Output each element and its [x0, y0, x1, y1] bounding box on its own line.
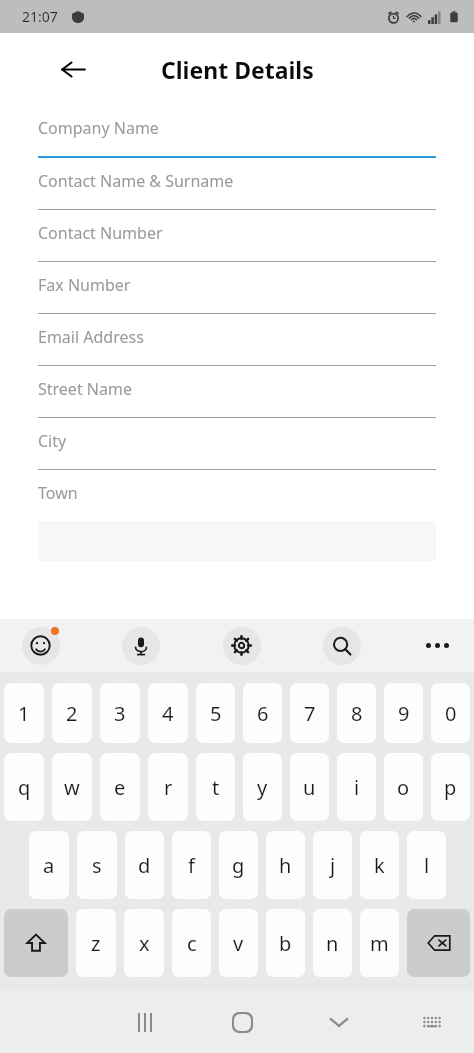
button[interactable]: 1 — [4, 683, 44, 743]
staticText: 21:07 — [22, 7, 58, 26]
button[interactable]: Back — [52, 48, 94, 90]
button[interactable]: g — [219, 831, 258, 899]
button[interactable]: Email Address — [38, 314, 436, 366]
button[interactable]: i — [337, 753, 376, 821]
staticText: l — [424, 852, 430, 879]
button[interactable]: v — [219, 909, 258, 977]
button[interactable]: 7 — [290, 683, 329, 743]
staticText: y — [257, 774, 268, 801]
staticText: c — [187, 930, 197, 957]
staticText: 5 — [210, 700, 222, 727]
button[interactable]: o — [384, 753, 423, 821]
button[interactable]: z — [76, 909, 116, 977]
staticText: Fax Number — [38, 274, 131, 296]
button[interactable]: Fax Number — [38, 262, 436, 314]
button[interactable]: Company Name — [38, 105, 436, 158]
button[interactable]: Backspace — [407, 909, 470, 977]
staticText: 2 — [66, 700, 78, 727]
staticText: x — [139, 930, 150, 957]
staticText: j — [330, 852, 336, 879]
staticText: Town — [38, 482, 78, 504]
staticText: p — [444, 774, 457, 801]
staticText: f — [188, 852, 195, 879]
staticText: t — [212, 774, 220, 801]
staticText: Client Details — [161, 54, 314, 85]
button[interactable]: Keyboard settings — [215, 619, 268, 672]
button[interactable]: m — [360, 909, 399, 977]
button[interactable]: Street Name — [38, 366, 436, 418]
button[interactable]: j — [313, 831, 352, 899]
button[interactable]: t — [196, 753, 235, 821]
staticText: w — [64, 774, 80, 801]
staticText: Email Address — [38, 326, 144, 348]
button[interactable]: 0 — [431, 683, 470, 743]
button[interactable]: y — [243, 753, 282, 821]
staticText: 4 — [162, 700, 174, 727]
button[interactable]: 6 — [243, 683, 282, 743]
button[interactable]: h — [266, 831, 305, 899]
button[interactable]: p — [431, 753, 470, 821]
staticText: k — [374, 852, 385, 879]
staticText: m — [370, 930, 389, 957]
staticText: Street Name — [38, 378, 132, 400]
button[interactable]: City — [38, 418, 436, 470]
button[interactable]: Shift — [4, 909, 68, 977]
button[interactable]: b — [266, 909, 305, 977]
staticText: 0 — [445, 700, 457, 727]
button[interactable]: 5 — [196, 683, 235, 743]
staticText: n — [326, 930, 339, 957]
staticText: r — [164, 774, 173, 801]
staticText: b — [279, 930, 292, 957]
staticText: Company Name — [38, 117, 159, 139]
staticText: 9 — [398, 700, 410, 727]
staticText: 8 — [351, 700, 363, 727]
staticText: h — [279, 852, 292, 879]
button[interactable]: Contact Name & Surname — [38, 158, 436, 210]
staticText: s — [92, 852, 102, 879]
staticText: a — [43, 852, 55, 879]
button[interactable]: c — [172, 909, 211, 977]
staticText: o — [397, 774, 410, 801]
button[interactable]: a — [29, 831, 69, 899]
button[interactable]: q — [4, 753, 44, 821]
staticText: 3 — [114, 700, 126, 727]
button[interactable]: Voice input — [114, 619, 167, 672]
button[interactable]: 8 — [337, 683, 376, 743]
button[interactable]: Recents — [121, 998, 169, 1046]
button[interactable]: 3 — [100, 683, 140, 743]
staticText: 7 — [304, 700, 316, 727]
button[interactable]: Hide keyboard — [315, 998, 363, 1046]
button[interactable]: n — [313, 909, 352, 977]
staticText: d — [138, 852, 151, 879]
button[interactable]: s — [77, 831, 117, 899]
button[interactable]: More options — [415, 623, 460, 668]
staticText: 1 — [18, 700, 30, 727]
button[interactable]: e — [100, 753, 140, 821]
button[interactable]: Switch keyboard — [412, 1002, 452, 1042]
button[interactable]: u — [290, 753, 329, 821]
button[interactable]: d — [125, 831, 164, 899]
staticText: City — [38, 430, 67, 452]
button[interactable]: w — [52, 753, 92, 821]
staticText: q — [18, 774, 31, 801]
staticText: e — [114, 774, 126, 801]
button[interactable]: 4 — [148, 683, 188, 743]
button[interactable]: Home — [218, 998, 266, 1046]
staticText: u — [303, 774, 316, 801]
button[interactable]: k — [360, 831, 399, 899]
button[interactable]: l — [407, 831, 446, 899]
button[interactable]: 9 — [384, 683, 423, 743]
button[interactable]: Contact Number — [38, 210, 436, 262]
staticText: Contact Name & Surname — [38, 170, 234, 192]
button[interactable]: r — [148, 753, 188, 821]
button[interactable]: Emoji — [14, 619, 67, 672]
staticText: z — [91, 930, 101, 957]
button[interactable]: 2 — [52, 683, 92, 743]
staticText: v — [233, 930, 244, 957]
button[interactable]: f — [172, 831, 211, 899]
button[interactable]: Search — [315, 619, 368, 672]
button[interactable]: x — [124, 909, 164, 977]
staticText: i — [354, 774, 360, 801]
staticText: Contact Number — [38, 222, 163, 244]
